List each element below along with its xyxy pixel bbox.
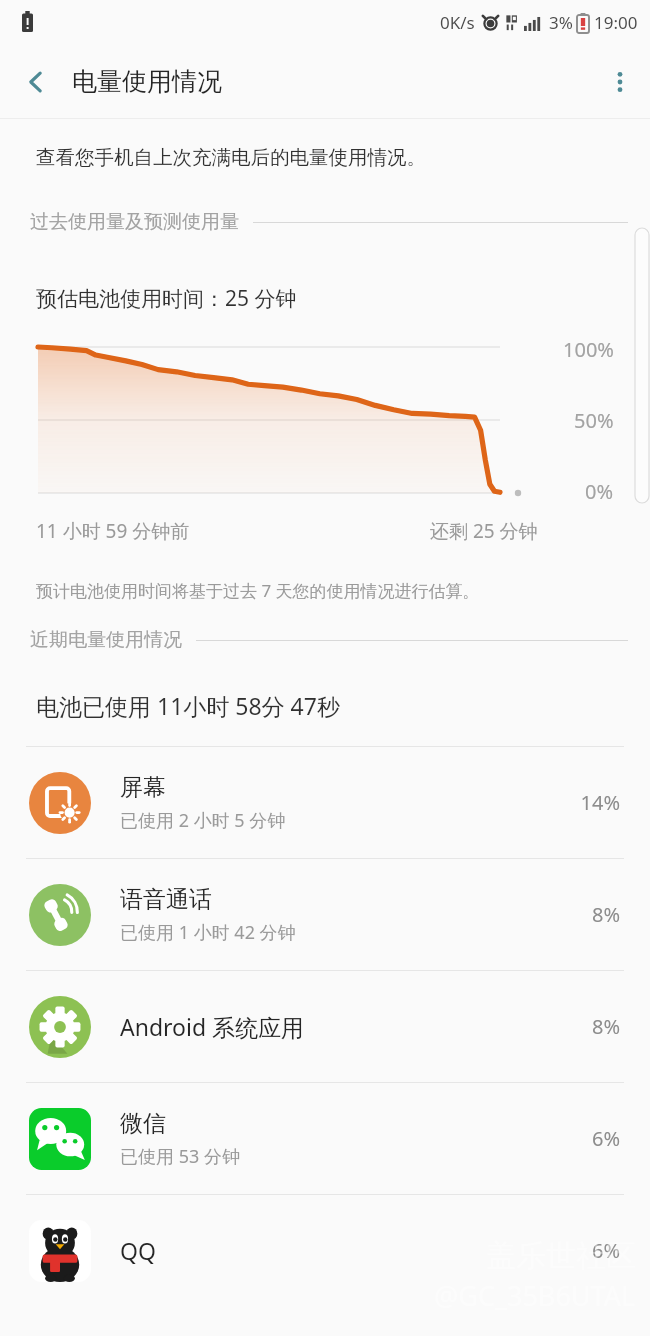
staticText: 0% <box>585 478 614 505</box>
button[interactable]: 微信 <box>0 1083 650 1194</box>
staticText: 0K/s <box>440 11 475 34</box>
staticText: 语音通话 <box>120 885 212 914</box>
staticText: 查看您手机自上次充满电后的电量使用情况。 <box>36 145 426 170</box>
staticText: 盖乐世社区 <box>486 1237 636 1275</box>
staticText: Android 系统应用 <box>120 1011 305 1042</box>
staticText: 还剩 25 分钟 <box>430 518 538 544</box>
staticText: QQ <box>120 1235 156 1266</box>
button[interactable]: Android 系统应用 <box>0 971 650 1082</box>
staticText: 6% <box>591 1125 620 1152</box>
staticText: 已使用 53 分钟 <box>120 1144 240 1169</box>
staticText: 预计电池使用时间将基于过去 7 天您的使用情况进行估算。 <box>36 579 480 602</box>
button[interactable]: 语音通话 <box>0 859 650 970</box>
staticText: 已使用 2 小时 5 分钟 <box>120 808 286 833</box>
staticText: 过去使用量及预测使用量 <box>30 210 239 234</box>
button[interactable]: QQ <box>0 1195 650 1306</box>
staticText: 19:00 <box>594 11 638 34</box>
staticText: 11 小时 59 分钟前 <box>36 518 190 544</box>
staticText: 14% <box>580 789 620 816</box>
staticText: 预估电池使用时间：25 分钟 <box>36 284 297 313</box>
staticText: 屏幕 <box>120 773 166 802</box>
staticText: 50% <box>574 407 614 434</box>
button[interactable]: Back <box>0 45 72 118</box>
staticText: 8% <box>591 901 620 928</box>
button[interactable]: More options <box>590 45 650 118</box>
staticText: 微信 <box>120 1109 166 1138</box>
staticText: 100% <box>563 336 614 363</box>
staticText: 8% <box>591 1013 620 1040</box>
staticText: 6% <box>591 1237 620 1264</box>
staticText: 电量使用情况 <box>72 66 222 97</box>
button[interactable]: 屏幕 <box>0 747 650 858</box>
staticText: 已使用 1 小时 42 分钟 <box>120 920 296 945</box>
staticText: 电池已使用 11小时 58分 47秒 <box>36 690 340 721</box>
staticText: 近期电量使用情况 <box>30 628 182 652</box>
staticText: 3% <box>549 11 573 34</box>
